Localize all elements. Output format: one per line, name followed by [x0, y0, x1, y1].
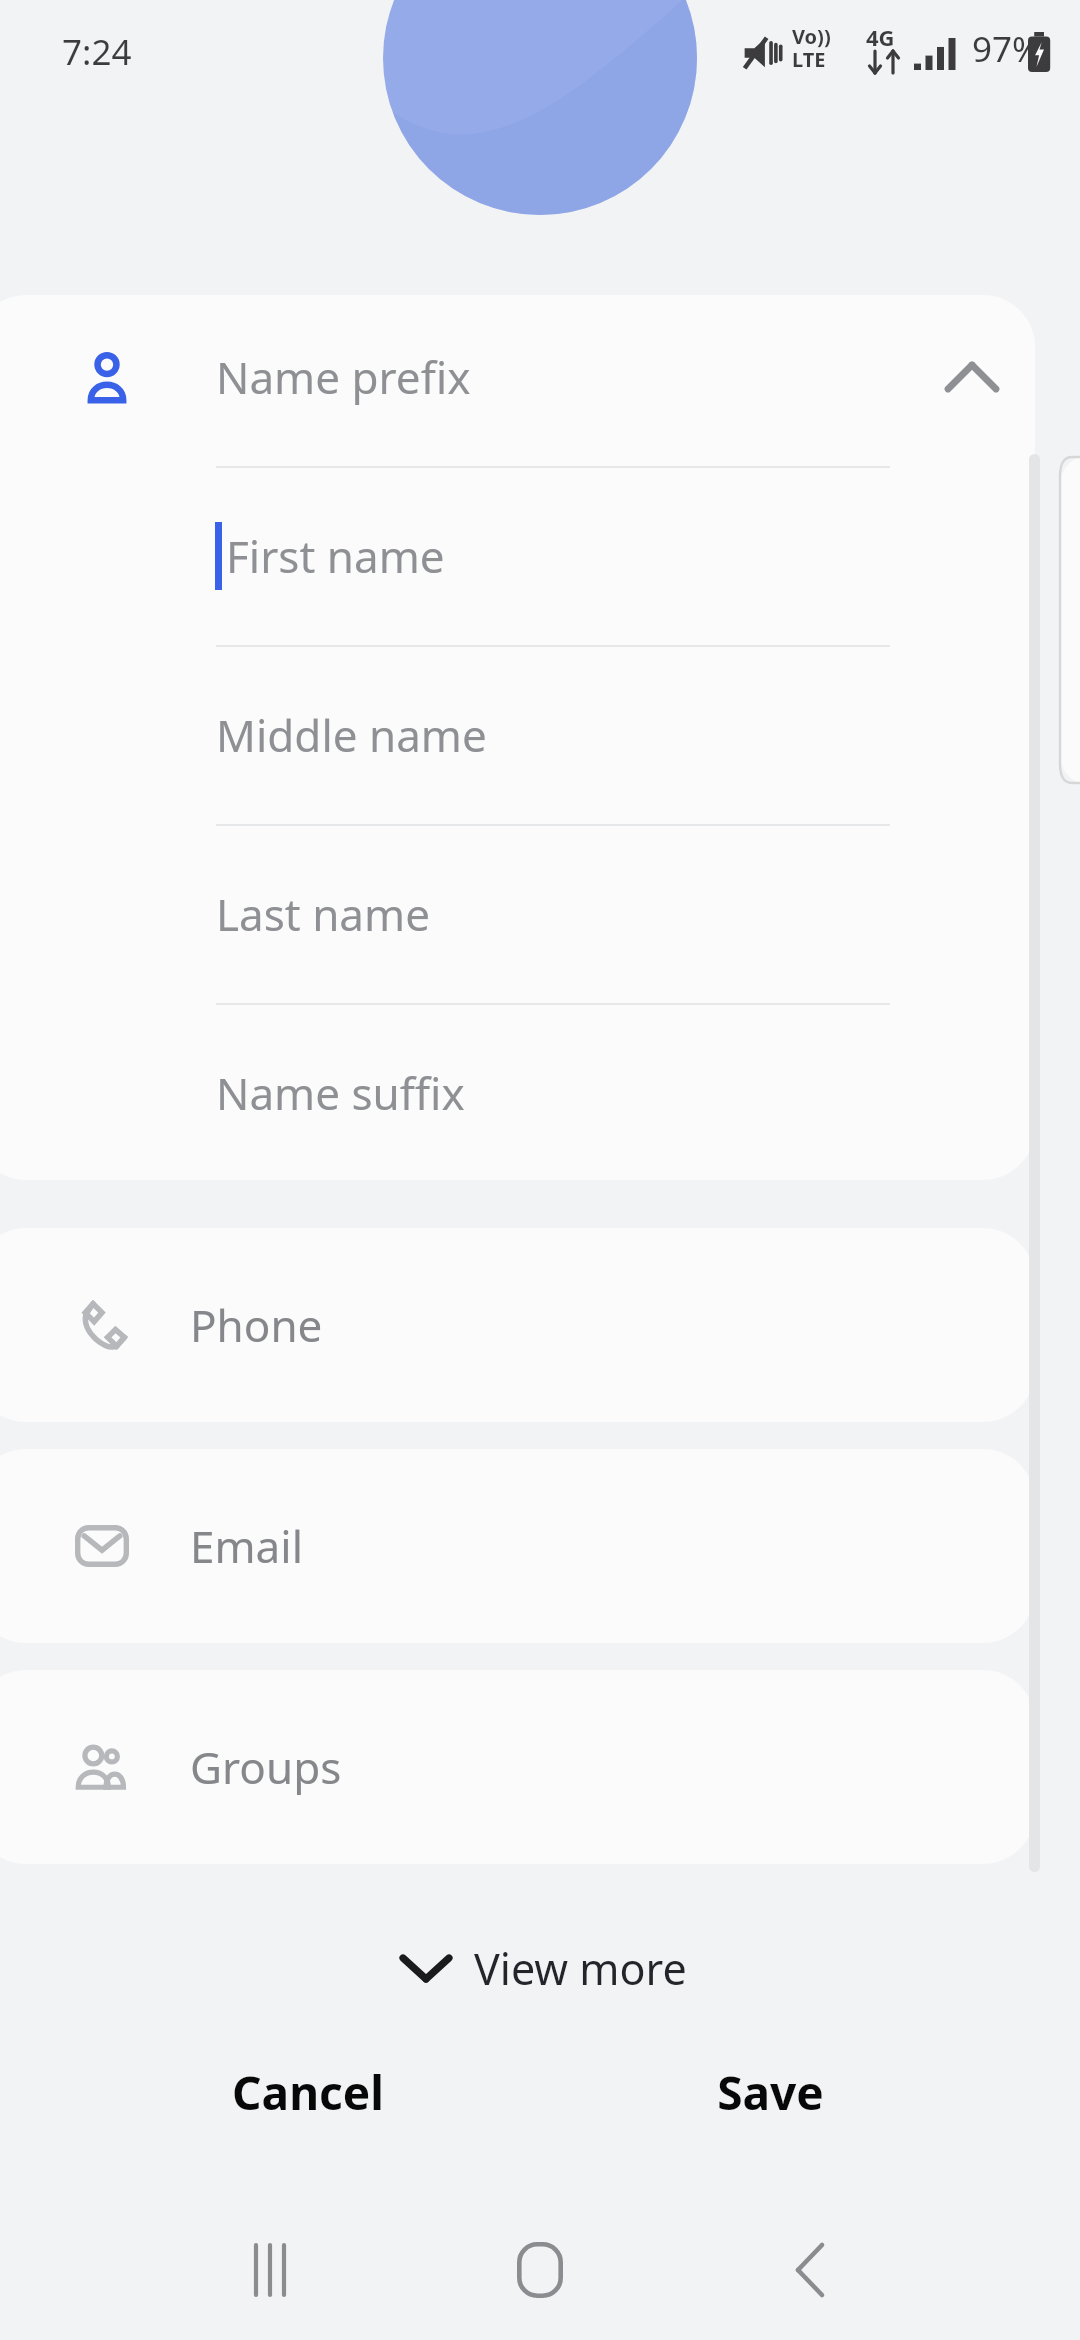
staticText: Email	[190, 1516, 303, 1576]
button[interactable]: Name suffix	[200, 1023, 900, 1163]
button[interactable]: Home	[420, 2200, 660, 2340]
staticText: Name prefix	[216, 347, 471, 407]
staticText: Last name	[216, 884, 430, 944]
staticText: Vo))	[792, 23, 831, 50]
button[interactable]: Middle name	[200, 665, 900, 805]
staticText: View more	[474, 1939, 687, 1998]
button[interactable]: Phone	[0, 1228, 1035, 1422]
button[interactable]: Email	[0, 1449, 1035, 1643]
staticText: 4G	[866, 22, 895, 52]
staticText: Middle name	[216, 705, 487, 765]
button[interactable]: Name prefix	[200, 307, 900, 447]
button[interactable]: First name	[200, 486, 900, 626]
staticText: First name	[226, 526, 445, 586]
staticText: LTE	[792, 46, 826, 73]
staticText: 97%	[972, 25, 1042, 73]
button[interactable]: Save	[620, 2040, 920, 2144]
button[interactable]: Last name	[200, 844, 900, 984]
staticText: Save	[717, 2061, 824, 2124]
staticText: Cancel	[232, 2061, 384, 2124]
staticText: Groups	[190, 1737, 342, 1797]
button[interactable]: Back	[690, 2200, 930, 2340]
staticText: 7:24	[62, 28, 132, 76]
other: Contact name	[80, 350, 134, 404]
button[interactable]: Groups	[0, 1670, 1035, 1864]
staticText: Name suffix	[216, 1063, 465, 1123]
button[interactable]: View more	[378, 1920, 708, 2016]
button[interactable]: Cancel	[158, 2040, 458, 2144]
staticText: Phone	[190, 1295, 323, 1355]
button[interactable]: Collapse name fields	[922, 327, 1022, 427]
button[interactable]: Recent apps	[150, 2200, 390, 2340]
